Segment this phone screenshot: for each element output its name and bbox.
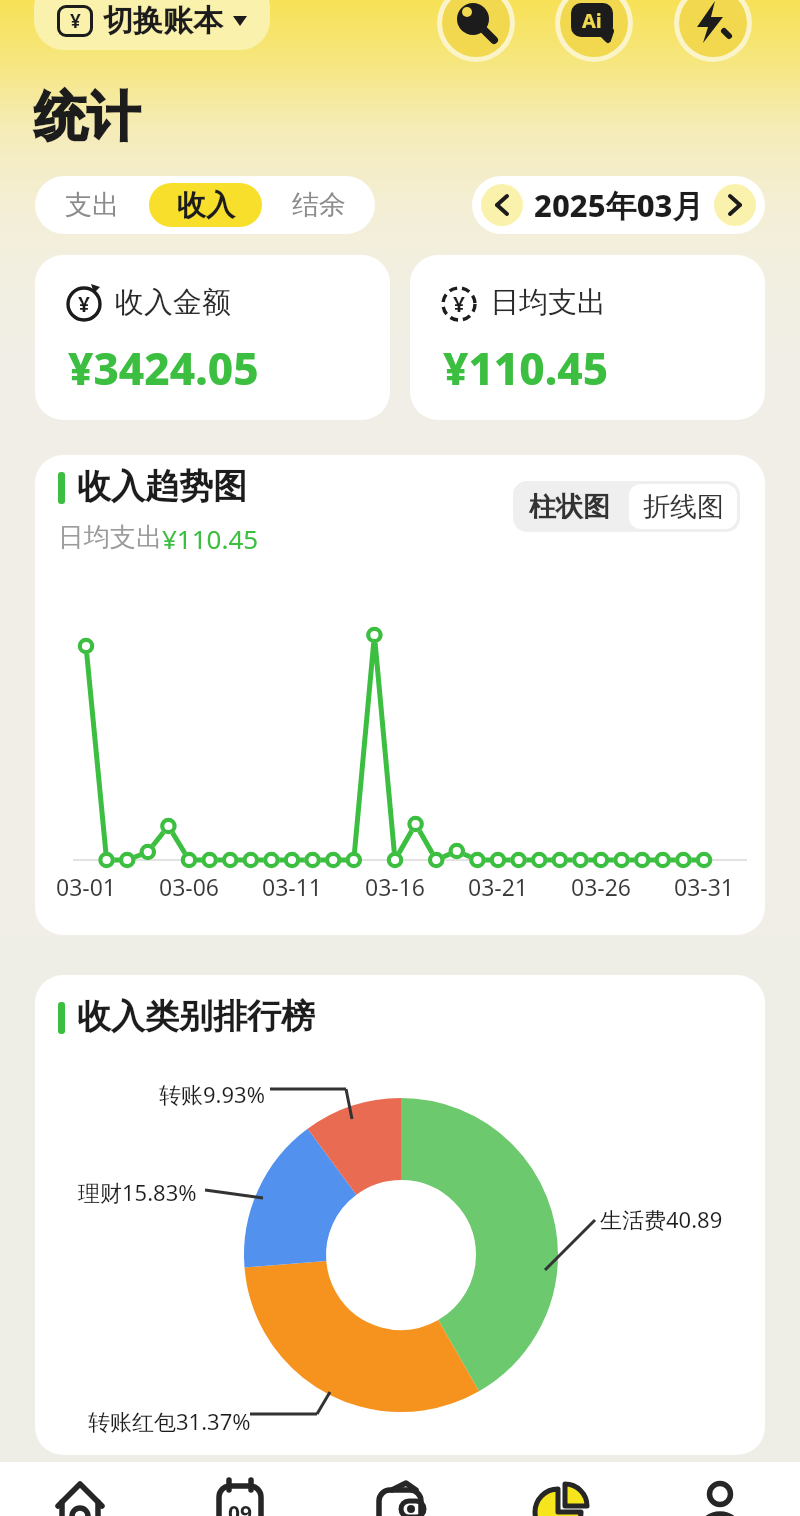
staticText: 收入趋势图	[77, 465, 247, 508]
button[interactable]	[0, 1462, 160, 1516]
staticText: 03-06	[159, 871, 220, 902]
staticText: 03-16	[365, 871, 426, 902]
staticText: 03-26	[571, 871, 632, 902]
staticText: 转账9.93%	[159, 1079, 265, 1109]
button[interactable]: ¥	[410, 255, 765, 420]
staticText: 切换账本	[103, 2, 223, 40]
button[interactable]: 折线图	[629, 484, 737, 529]
staticText: 03-31	[674, 871, 735, 902]
staticText: 理财15.83%	[78, 1177, 197, 1207]
button[interactable]: 柱状图	[513, 481, 626, 532]
staticText: 支出	[65, 188, 119, 222]
staticText: 03-21	[468, 871, 529, 902]
staticText: 03-01	[56, 871, 117, 902]
button[interactable]	[640, 1462, 800, 1516]
button[interactable]	[679, 0, 747, 57]
button[interactable]: 结余	[262, 176, 375, 234]
staticText: ¥	[70, 8, 81, 34]
staticText: 收入类别排行榜	[77, 995, 315, 1038]
staticText: 09	[228, 1499, 253, 1516]
staticText: ¥	[453, 290, 466, 319]
staticText: ¥110.45	[162, 521, 259, 556]
staticText: ¥3424.05	[68, 338, 259, 398]
staticText: 日均支出	[490, 284, 606, 321]
staticText: 转账红包31.37%	[88, 1406, 251, 1436]
staticText: 03-11	[262, 871, 323, 902]
button[interactable]: ¥	[34, 0, 270, 50]
staticText: 日均支出	[58, 521, 162, 554]
staticText: 统计	[34, 84, 140, 151]
staticText: 柱状图	[529, 490, 610, 524]
button[interactable]: Ai	[560, 0, 628, 57]
staticText: 折线图	[643, 490, 724, 524]
staticText: Ai	[582, 7, 602, 34]
button[interactable]	[481, 184, 523, 226]
button[interactable]: 支出	[35, 176, 149, 234]
staticText: 2025年03月	[534, 184, 704, 226]
button[interactable]	[442, 0, 510, 57]
button[interactable]: 09	[160, 1462, 320, 1516]
staticText: 结余	[292, 188, 346, 222]
button[interactable]	[480, 1462, 640, 1516]
button[interactable]: ¥	[35, 255, 390, 420]
staticText: 生活费40.89	[600, 1204, 723, 1234]
button[interactable]: 收入	[149, 183, 262, 227]
button[interactable]	[320, 1462, 480, 1516]
staticText: 收入	[177, 187, 235, 224]
staticText: ¥110.45	[443, 338, 609, 398]
staticText: 收入金额	[115, 284, 231, 321]
staticText: ¥	[78, 290, 91, 319]
button[interactable]	[714, 184, 756, 226]
